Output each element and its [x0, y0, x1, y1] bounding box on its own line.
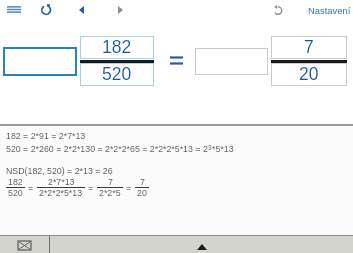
staticText: 520 — [102, 64, 132, 84]
staticText: = — [88, 183, 94, 193]
staticText: = — [126, 183, 132, 193]
staticText: 3 — [208, 144, 212, 151]
staticText: 7 — [108, 177, 113, 187]
staticText: 520 = 2*260 = 2*2*130 = 2*2*2*65 = 2*2*2… — [6, 144, 208, 154]
staticText: 7 — [140, 177, 145, 187]
button[interactable]: Undo — [266, 0, 288, 20]
button[interactable] — [3, 47, 77, 76]
button[interactable]: 520 — [80, 63, 154, 86]
button[interactable]: Reset — [34, 0, 58, 19]
staticText: 182 — [8, 177, 23, 187]
button[interactable]: Previous — [70, 0, 92, 19]
staticText: 2*2*2*5*13 — [39, 188, 83, 198]
button[interactable] — [195, 48, 268, 75]
staticText: *5*13 — [212, 144, 234, 154]
staticText: 20 — [137, 188, 147, 198]
button[interactable]: Expand keyboard — [50, 236, 353, 253]
button[interactable]: 7 — [271, 36, 347, 59]
staticText: 182 = 2*91 = 2*7*13 — [6, 131, 86, 141]
staticText: 520 — [8, 188, 23, 198]
staticText: = — [28, 183, 34, 193]
button[interactable]: Mail — [0, 236, 49, 253]
button[interactable]: 182 — [80, 36, 154, 59]
staticText: 20 — [299, 64, 319, 84]
staticText: 7 — [304, 37, 314, 57]
button[interactable]: Next — [109, 0, 131, 19]
button[interactable]: 20 — [271, 63, 347, 86]
staticText: 2*2*5 — [99, 188, 121, 198]
staticText: NSD(182, 520) = 2*13 = 26 — [6, 166, 113, 176]
staticText: Nastavení — [308, 5, 351, 16]
staticText: 182 — [102, 37, 132, 57]
staticText: 2*7*13 — [48, 177, 75, 187]
button[interactable]: Nastavení — [306, 0, 353, 20]
button[interactable]: Menu — [2, 0, 26, 18]
